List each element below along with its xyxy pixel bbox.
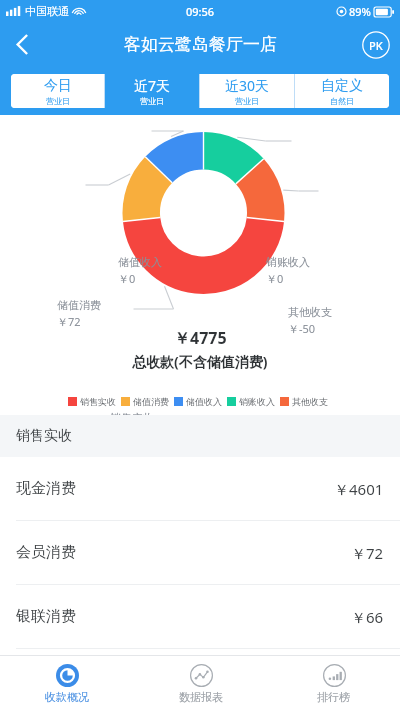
staticText: 收款概况 [45, 690, 89, 704]
staticText: ￥72 [57, 314, 81, 329]
button[interactable]: 收款概况 [0, 656, 134, 711]
staticText: 营业日 [46, 96, 70, 106]
staticText: 营业日 [235, 96, 259, 106]
staticText: ￥66 [351, 607, 384, 627]
staticText: ￥4775 [174, 327, 227, 349]
staticText: 储值收入 [118, 255, 162, 269]
staticText: 客如云鹭岛餐厅一店 [124, 34, 277, 55]
button[interactable]: 会员消费 [0, 521, 400, 585]
staticText: 储值消费 [133, 396, 169, 407]
staticText: 89% [349, 4, 371, 19]
button[interactable]: 排行榜 [267, 656, 400, 711]
staticText: 近7天 [134, 76, 171, 95]
staticText: ￥4601 [334, 479, 384, 499]
button[interactable]: 银联消费 [0, 585, 400, 649]
staticText: 09:56 [186, 4, 215, 19]
staticText: 现金消费 [16, 479, 76, 498]
staticText: 储值消费 [57, 298, 101, 312]
staticText: 销账收入 [239, 396, 275, 407]
button[interactable]: Back [0, 22, 44, 67]
staticText: 自然日 [330, 96, 354, 106]
staticText: 数据报表 [179, 690, 223, 704]
button[interactable]: 现金消费 [0, 457, 400, 521]
staticText: ￥0 [118, 271, 136, 286]
button[interactable]: 近7天 [105, 74, 199, 108]
staticText: 营业日 [140, 96, 164, 106]
staticText: 中国联通 [25, 4, 69, 18]
staticText: 近30天 [225, 76, 270, 95]
button[interactable]: 今日 [11, 74, 104, 108]
staticText: PK [369, 38, 383, 53]
staticText: 今日 [44, 77, 72, 95]
button[interactable]: 近30天 [200, 74, 294, 108]
staticText: 销账收入 [266, 255, 310, 269]
staticText: 销售实收 [16, 427, 72, 445]
staticText: 其他收支 [292, 396, 328, 407]
staticText: 总收款(不含储值消费) [132, 352, 268, 371]
staticText: 自定义 [321, 77, 363, 95]
button[interactable]: PK [362, 31, 390, 59]
staticText: 排行榜 [317, 690, 350, 704]
staticText: 销售实收 [110, 411, 154, 425]
staticText: ￥72 [351, 543, 384, 563]
button[interactable]: 数据报表 [134, 656, 267, 711]
staticText: 储值收入 [186, 396, 222, 407]
staticText: 银联消费 [16, 607, 76, 626]
staticText: ￥0 [266, 271, 284, 286]
button[interactable]: 自定义 [295, 74, 389, 108]
staticText: 其他收支 [288, 305, 332, 319]
staticText: 会员消费 [16, 543, 76, 562]
staticText: 销售实收 [80, 396, 116, 407]
staticText: ￥-50 [288, 321, 316, 336]
